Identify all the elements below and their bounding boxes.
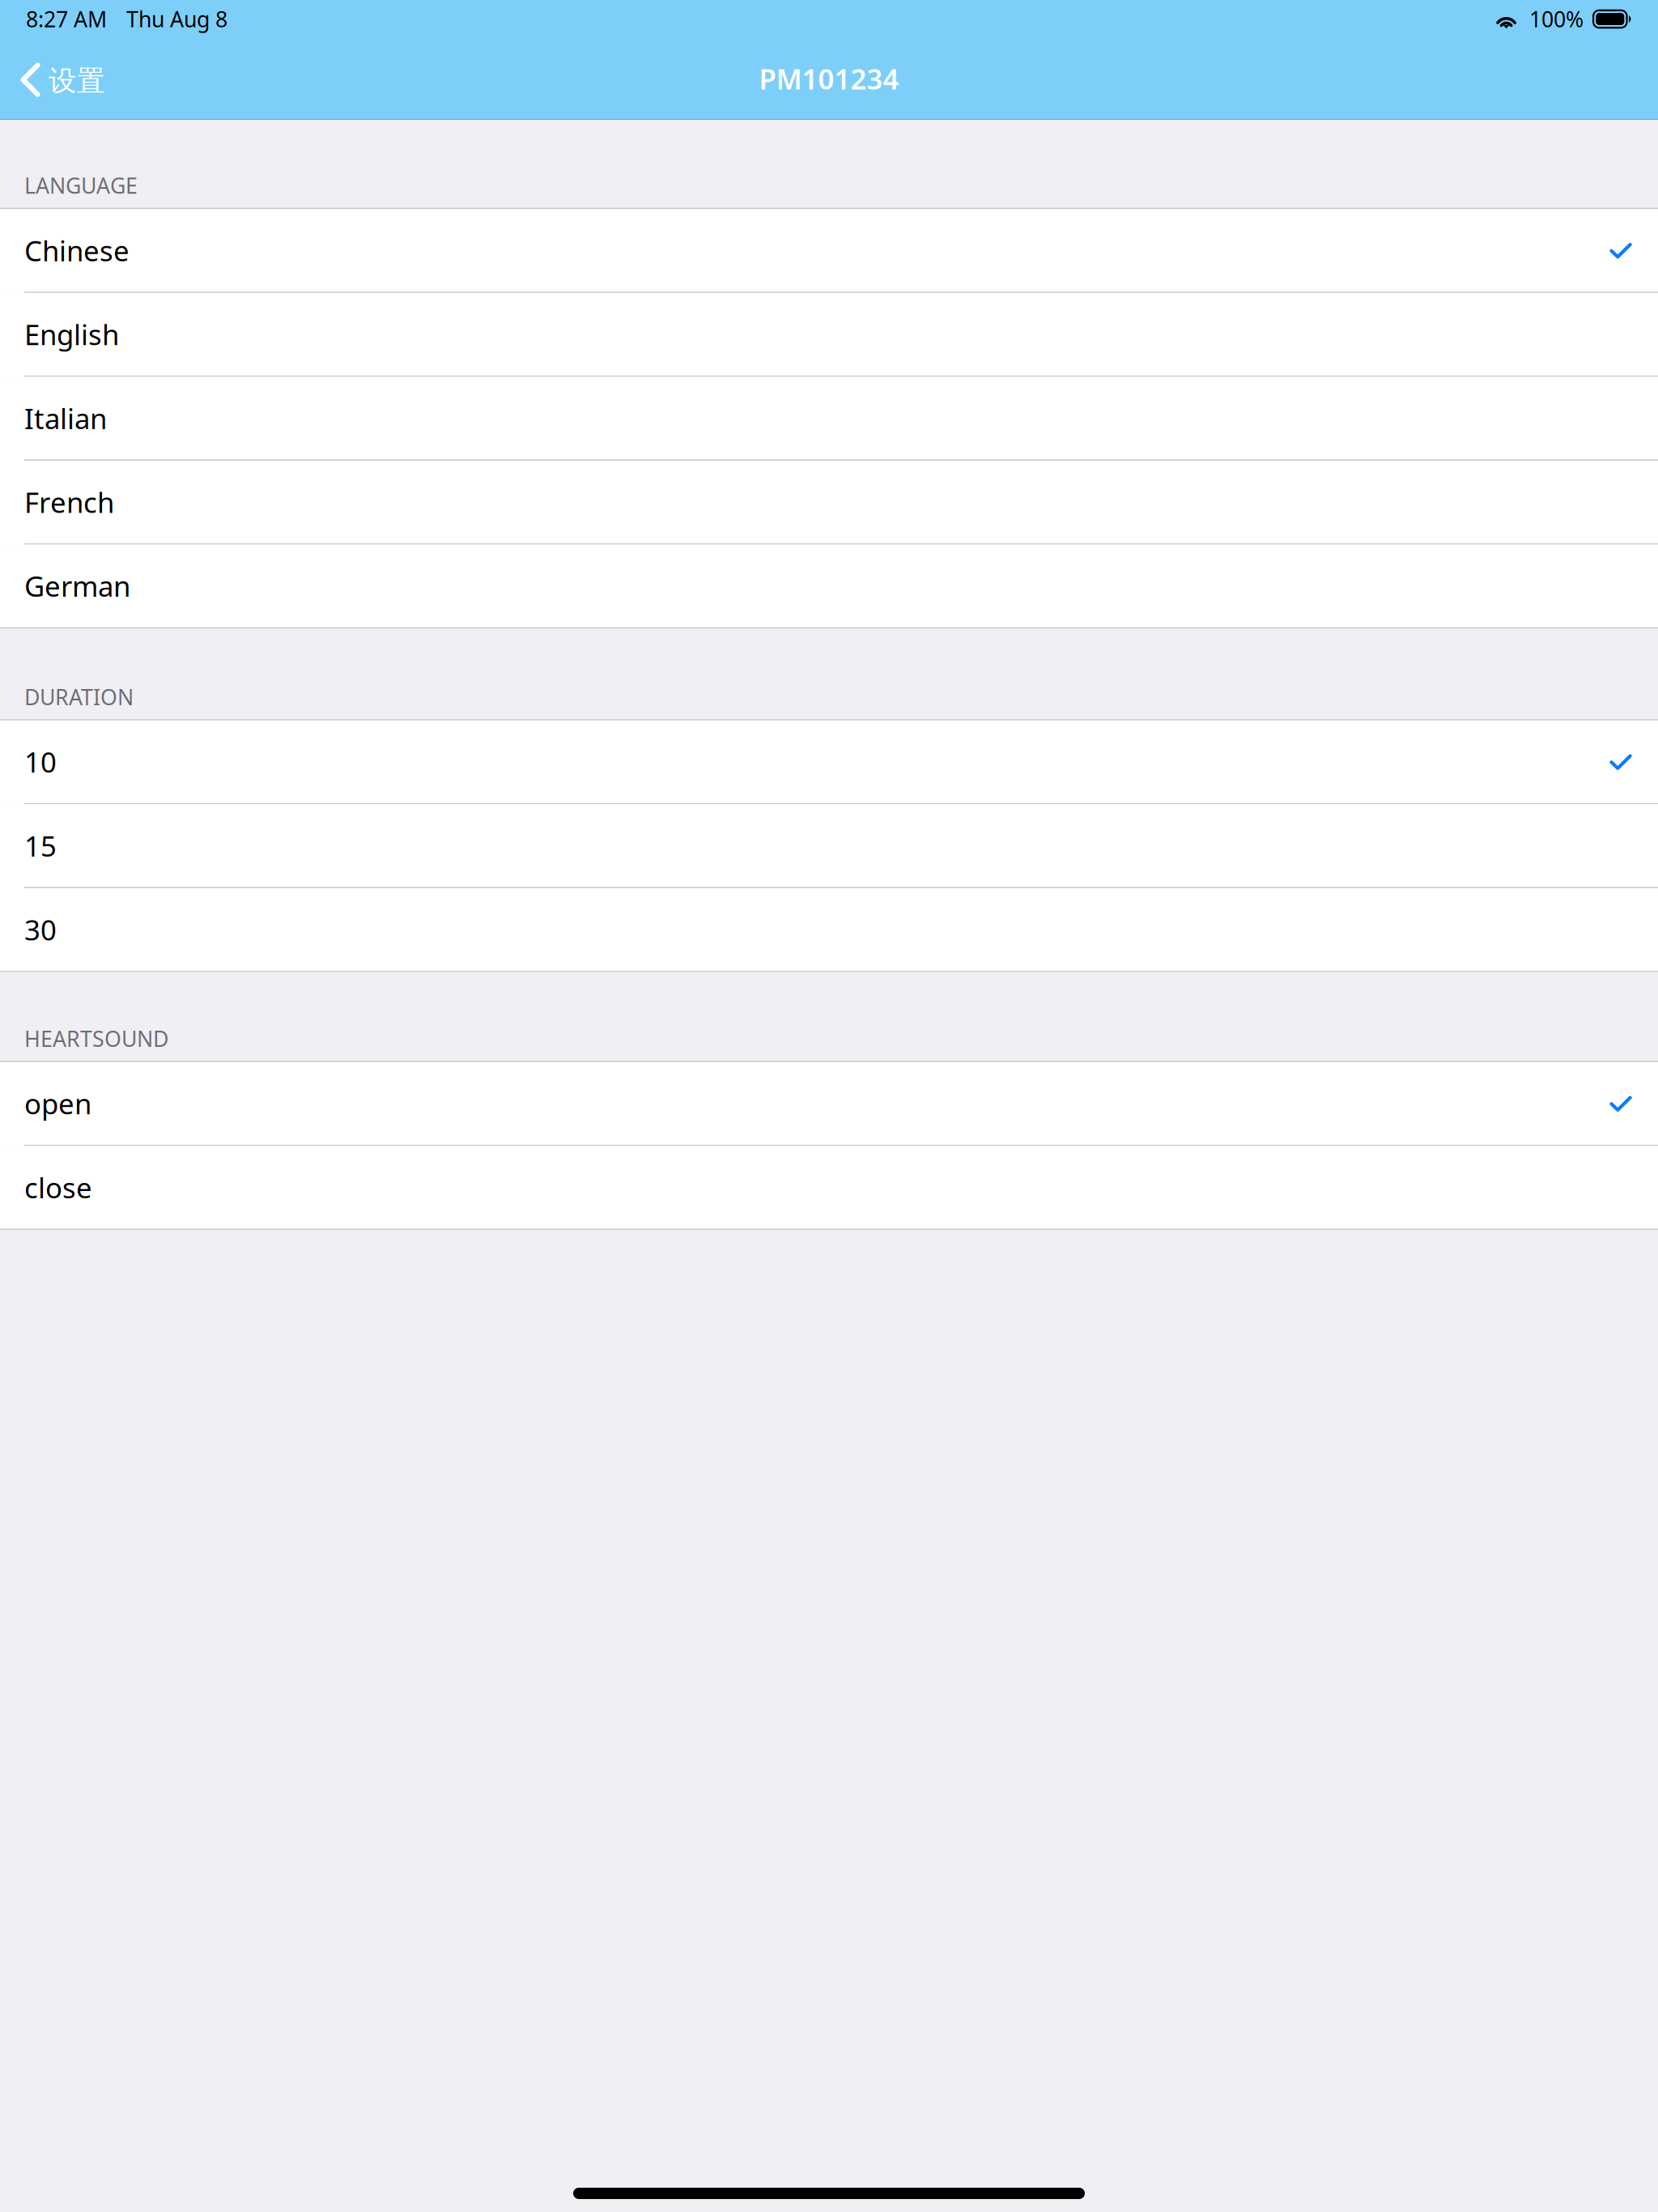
staticText: 100% [1529, 5, 1584, 33]
button[interactable]: 15 [0, 804, 1658, 888]
staticText: 设置 [49, 64, 105, 98]
button[interactable]: Italian [0, 377, 1658, 461]
button[interactable]: open [0, 1062, 1658, 1146]
button[interactable]: Chinese [0, 209, 1658, 293]
staticText: close [24, 1169, 92, 1206]
staticText: 10 [24, 743, 57, 780]
staticText: PM101234 [759, 60, 899, 97]
button[interactable]: French [0, 461, 1658, 545]
staticText: 8:27 AM [26, 5, 107, 33]
staticText: open [24, 1085, 91, 1122]
button[interactable]: 30 [0, 888, 1658, 972]
button[interactable]: 10 [0, 720, 1658, 804]
button[interactable]: English [0, 293, 1658, 377]
staticText: English [24, 316, 119, 353]
staticText: German [24, 567, 130, 604]
staticText: Chinese [24, 232, 130, 269]
staticText: HEARTSOUND [24, 1024, 168, 1053]
button[interactable]: close [0, 1146, 1658, 1230]
staticText: LANGUAGE [24, 171, 138, 200]
staticText: French [24, 483, 114, 521]
staticText: DURATION [24, 682, 134, 711]
staticText: 30 [24, 911, 57, 948]
staticText: Thu Aug 8 [126, 5, 227, 33]
staticText: 15 [24, 827, 57, 864]
staticText: Italian [24, 399, 107, 437]
button[interactable]: 设置 [0, 38, 118, 119]
button[interactable]: German [0, 545, 1658, 628]
